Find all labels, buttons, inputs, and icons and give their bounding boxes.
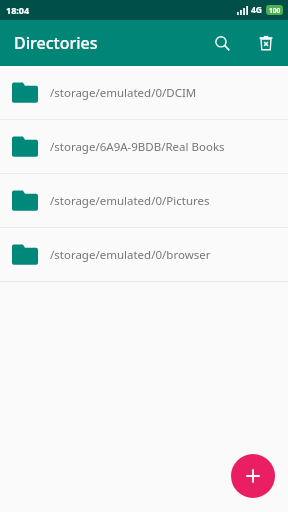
button[interactable]: Add directory xyxy=(231,454,275,498)
button[interactable]: Search xyxy=(200,21,244,65)
button[interactable]: /storage/emulated/0/Pictures xyxy=(0,174,288,227)
staticText: /storage/6A9A-9BDB/Real Books xyxy=(50,139,225,155)
button[interactable]: /storage/emulated/0/DCIM xyxy=(0,66,288,119)
staticText: 18:04 xyxy=(6,4,30,16)
button[interactable]: /storage/6A9A-9BDB/Real Books xyxy=(0,120,288,173)
staticText: 4G xyxy=(251,4,263,16)
staticText: /storage/emulated/0/DCIM xyxy=(50,85,197,101)
staticText: Directories xyxy=(14,32,98,54)
button[interactable]: Delete xyxy=(244,21,288,65)
staticText: /storage/emulated/0/Pictures xyxy=(50,193,210,209)
staticText: /storage/emulated/0/browser xyxy=(50,247,211,263)
button[interactable]: /storage/emulated/0/browser xyxy=(0,228,288,281)
staticText: 100 xyxy=(269,6,281,15)
